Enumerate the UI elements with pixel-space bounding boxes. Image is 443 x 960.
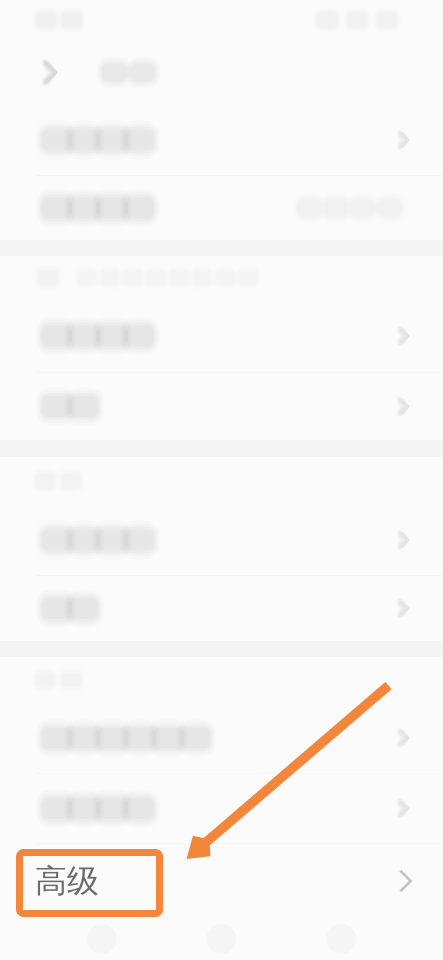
button[interactable]: Back bbox=[34, 45, 64, 99]
button[interactable] bbox=[0, 373, 443, 440]
button[interactable] bbox=[0, 176, 443, 240]
button[interactable] bbox=[0, 505, 443, 575]
button[interactable] bbox=[0, 300, 443, 372]
button[interactable] bbox=[0, 774, 443, 843]
button[interactable]: 高级 bbox=[0, 844, 443, 918]
button[interactable] bbox=[0, 703, 443, 773]
button[interactable] bbox=[0, 576, 443, 641]
staticText: 高级 bbox=[35, 861, 99, 901]
button[interactable] bbox=[0, 105, 443, 175]
